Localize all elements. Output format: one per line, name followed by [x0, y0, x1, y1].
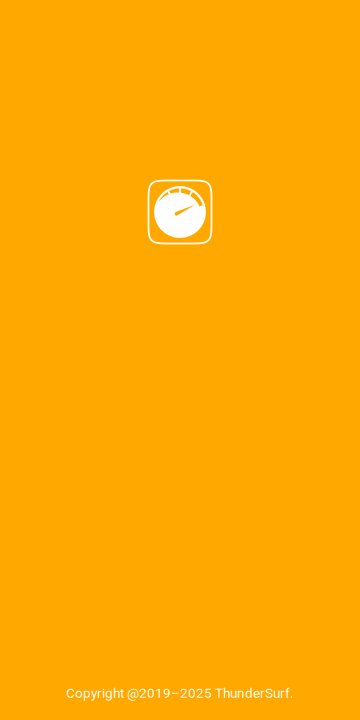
staticText: Copyright @2019–2025 ThunderSurf. [66, 685, 294, 701]
